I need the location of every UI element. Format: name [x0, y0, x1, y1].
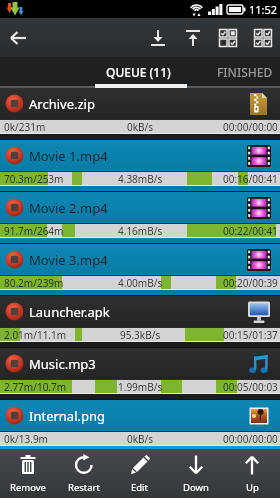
staticText: Launcher.apk — [29, 303, 110, 321]
button[interactable]: Movie 2.mp4 — [0, 192, 280, 244]
staticText: Movie 2.mp4 — [29, 199, 108, 217]
staticText: Edit — [131, 481, 149, 494]
staticText: Down — [183, 481, 209, 494]
button[interactable]: Music.mp3 — [0, 348, 280, 400]
staticText: Restart — [68, 481, 100, 494]
staticText: FINISHED — [217, 64, 273, 80]
button[interactable] — [210, 18, 245, 57]
staticText: Up — [246, 481, 259, 494]
staticText: 0k/231m — [4, 120, 46, 134]
button[interactable]: QUEUE (11) — [0, 57, 187, 88]
staticText: 4.00mB/s — [118, 276, 163, 290]
staticText: Music.mp3 — [29, 355, 96, 373]
staticText: 00:20/00:39 — [223, 276, 278, 290]
button[interactable] — [245, 18, 280, 57]
staticText: 80.2m/239m — [4, 276, 64, 290]
button[interactable] — [0, 18, 36, 57]
staticText: 91.7m/264m — [4, 224, 64, 238]
staticText: Archive.zip — [29, 95, 95, 113]
staticText: 2.01m/11.1m — [4, 328, 67, 342]
button[interactable]: Up — [224, 449, 280, 498]
button[interactable]: Edit — [112, 449, 168, 498]
staticText: 00:22/00:41 — [223, 224, 278, 238]
button[interactable] — [175, 18, 210, 57]
staticText: 95.3kB/s — [120, 328, 161, 342]
staticText: QUEUE (11) — [106, 64, 171, 80]
button[interactable]: Launcher.apk — [0, 296, 280, 348]
staticText: 0kB/s — [127, 120, 154, 134]
button[interactable]: Archive.zip — [0, 88, 280, 140]
button[interactable]: FINISHED — [187, 57, 280, 88]
staticText: 2.77m/10.7m — [4, 380, 67, 394]
staticText: Internal.png — [29, 407, 106, 425]
button[interactable]: Movie 3.mp4 — [0, 244, 280, 296]
staticText: 0kB/s — [127, 432, 154, 446]
staticText: Movie 1.mp4 — [29, 147, 108, 165]
staticText: 00:00/00:00 — [223, 432, 278, 446]
staticText: 1.99mB/s — [118, 380, 163, 394]
staticText: 00:15/01:37 — [223, 328, 278, 342]
staticText: 0k/13.9m — [4, 432, 48, 446]
staticText: 4.38mB/s — [118, 172, 163, 186]
staticText: 00:00/00:00 — [223, 120, 278, 134]
staticText: Remove — [10, 481, 46, 494]
staticText: 11:52 — [249, 2, 278, 17]
button[interactable]: Movie 1.mp4 — [0, 140, 280, 192]
staticText: 4.16mB/s — [118, 224, 163, 238]
staticText: 00:05/00:03 — [223, 380, 278, 394]
button[interactable]: Down — [168, 449, 224, 498]
button[interactable]: Restart — [56, 449, 112, 498]
staticText: 70.3m/253m — [4, 172, 64, 186]
staticText: 00:16/00:41 — [223, 172, 278, 186]
button[interactable] — [140, 18, 175, 57]
button[interactable]: Internal.png — [0, 400, 280, 449]
staticText: Movie 3.mp4 — [29, 251, 108, 269]
button[interactable]: Remove — [0, 449, 56, 498]
